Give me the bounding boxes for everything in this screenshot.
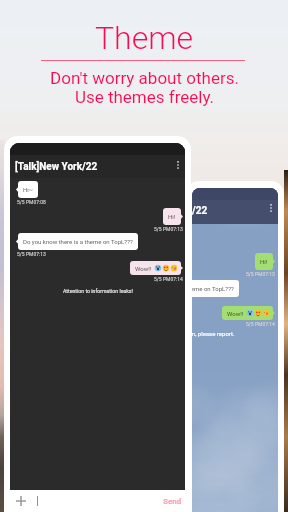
staticText: Attention to information leaks! — [63, 288, 133, 294]
button[interactable]: More options — [265, 202, 277, 214]
staticText: Hi! — [260, 258, 268, 265]
staticText: Hi! — [168, 213, 176, 220]
staticText: 5/5 PM07:13 — [154, 226, 183, 232]
button[interactable]: Send — [163, 497, 182, 506]
staticText: Hi~ — [23, 186, 33, 193]
staticText: Don't worry about others. Use themes fre… — [50, 68, 239, 107]
staticText: lesbian, please report. — [192, 330, 235, 337]
staticText: 5/5 PM07:13 — [246, 271, 275, 277]
staticText: 5/5 PM07:14 — [246, 321, 275, 327]
staticText: /22 — [192, 205, 208, 217]
staticText: Wow!! — [135, 265, 152, 272]
staticText: Theme — [95, 19, 194, 57]
button[interactable]: Add attachment — [14, 494, 28, 508]
button[interactable]: More options — [172, 159, 184, 171]
staticText: 5/5 PM07:08 — [17, 199, 46, 205]
staticText: 5/5 PM07:14 — [154, 276, 183, 282]
staticText: 5/5 PM07:13 — [17, 251, 46, 257]
staticText: Wow!! — [227, 310, 244, 317]
staticText: [Talk]New York/22 — [15, 161, 98, 173]
staticText: Do you know there is a theme on TopL??? — [23, 238, 133, 245]
staticText: Do you know there is a theme on TopL??? — [192, 285, 234, 292]
